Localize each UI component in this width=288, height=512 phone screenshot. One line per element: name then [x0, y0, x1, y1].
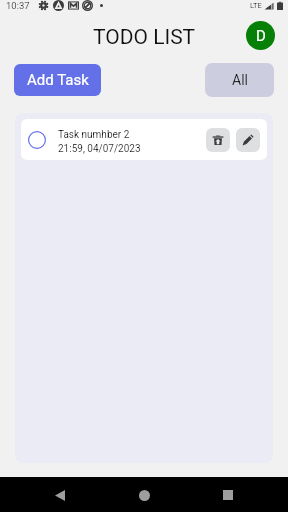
button[interactable]: Profile [246, 21, 275, 50]
button[interactable]: Complete task [28, 131, 46, 149]
staticText: All [232, 72, 248, 88]
staticText: Add Task [27, 71, 89, 89]
button[interactable]: Complete task [21, 119, 267, 160]
button[interactable]: Add Task [14, 64, 101, 96]
staticText: D [256, 27, 266, 45]
button[interactable]: Recents [212, 479, 244, 511]
button[interactable]: Delete [206, 128, 230, 152]
button[interactable]: Home [128, 479, 160, 511]
staticText: 10:37 [6, 0, 30, 11]
staticText: TODO LIST [93, 25, 196, 50]
button[interactable]: Back [44, 479, 76, 511]
button[interactable]: Edit [236, 128, 260, 152]
button[interactable]: All [205, 63, 274, 97]
staticText: Task numhber 2 [58, 129, 130, 141]
staticText: 21:59, 04/07/2023 [58, 143, 141, 155]
staticText: LTE [250, 1, 262, 10]
